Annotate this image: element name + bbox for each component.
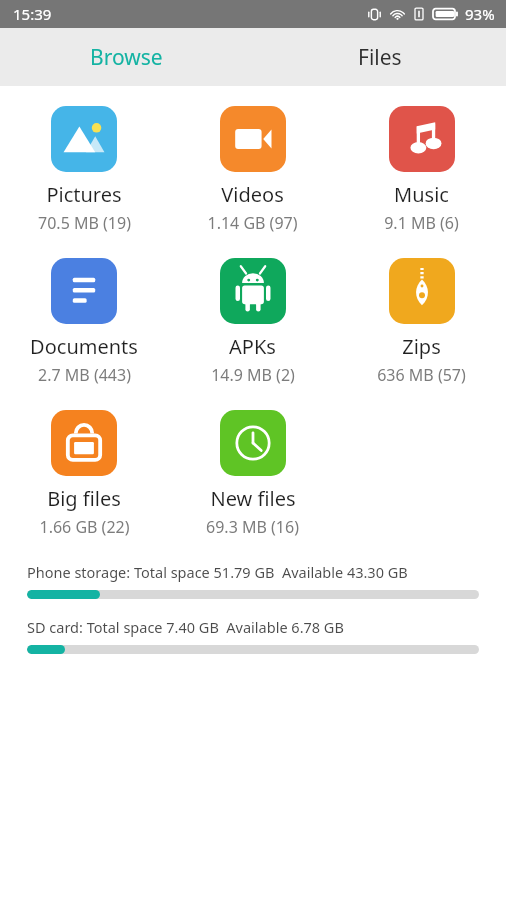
button[interactable]: APKs xyxy=(168,254,337,390)
button[interactable]: Browse xyxy=(0,28,253,86)
staticText: APKs xyxy=(229,333,276,360)
staticText: 15:39 xyxy=(13,4,52,24)
staticText: Files xyxy=(358,43,402,72)
button[interactable]: Zips xyxy=(337,254,506,390)
staticText: 636 MB (57) xyxy=(377,364,466,386)
staticText: 70.5 MB (19) xyxy=(38,212,131,234)
staticText: SD card: Total space 7.40 GB Available 6… xyxy=(27,617,344,637)
staticText: 9.1 MB (6) xyxy=(384,212,459,234)
button[interactable]: New files xyxy=(168,406,337,542)
button[interactable]: Documents xyxy=(0,254,168,390)
button[interactable]: Files xyxy=(253,28,506,86)
staticText: 69.3 MB (16) xyxy=(206,516,299,538)
staticText: Zips xyxy=(402,333,441,360)
button[interactable]: Big files xyxy=(0,406,168,542)
staticText: Pictures xyxy=(46,181,122,208)
staticText: Big files xyxy=(47,485,121,512)
button[interactable]: Pictures xyxy=(0,102,168,238)
staticText: 2.7 MB (443) xyxy=(38,364,131,386)
staticText: Music xyxy=(394,181,449,208)
staticText: 93% xyxy=(465,4,495,24)
staticText: Videos xyxy=(221,181,284,208)
staticText: 1.66 GB (22) xyxy=(39,516,130,538)
staticText: Browse xyxy=(90,43,163,72)
staticText: Documents xyxy=(30,333,138,360)
staticText: Phone storage: Total space 51.79 GB Avai… xyxy=(27,562,408,582)
button[interactable]: Videos xyxy=(168,102,337,238)
staticText: New files xyxy=(210,485,296,512)
button[interactable]: Music xyxy=(337,102,506,238)
staticText: 1.14 GB (97) xyxy=(207,212,298,234)
staticText: 14.9 MB (2) xyxy=(211,364,295,386)
